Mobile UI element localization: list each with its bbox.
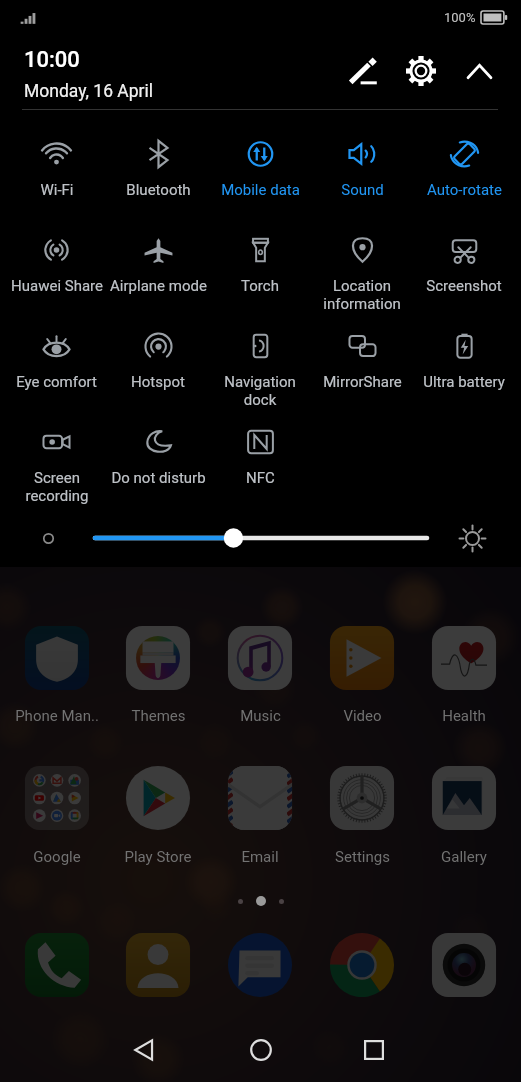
button[interactable]: Email	[209, 762, 311, 880]
button[interactable]: Chrome	[311, 929, 413, 1001]
button[interactable]: Mobile data	[209, 120, 311, 216]
staticText: 100%	[444, 10, 476, 25]
staticText: Airplane mode	[110, 277, 207, 295]
staticText: Auto-rotate	[427, 181, 502, 199]
button[interactable]: NFC	[209, 408, 311, 504]
staticText: Screenshot	[426, 277, 502, 295]
staticText: Eye comfort	[16, 373, 97, 391]
staticText: Wi-Fi	[40, 181, 74, 199]
staticText: Play Store	[124, 848, 192, 866]
button[interactable]: Eye comfort	[6, 312, 107, 408]
button[interactable]: Settings	[311, 762, 413, 880]
button[interactable]: Location information	[311, 216, 413, 312]
button[interactable]: Ultra battery	[413, 312, 515, 408]
staticText: Gallery	[441, 848, 487, 866]
button[interactable]: Torch	[209, 216, 311, 312]
button[interactable]: Airplane mode	[107, 216, 209, 312]
button[interactable]: Wi-Fi	[6, 120, 107, 216]
staticText: Huawei Share	[11, 277, 103, 295]
button[interactable]: Home	[231, 1020, 291, 1080]
staticText: Google	[33, 848, 81, 866]
button[interactable]: Recents	[344, 1020, 404, 1080]
button[interactable]: MirrorShare	[311, 312, 413, 408]
button[interactable]: Auto brightness	[28, 519, 68, 557]
button[interactable]: Settings	[397, 47, 445, 95]
button[interactable]: Themes	[107, 622, 209, 740]
staticText: Hotspot	[131, 373, 185, 391]
staticText: Email	[241, 848, 279, 866]
button[interactable]: Screenshot	[413, 216, 515, 312]
button[interactable]: Hotspot	[107, 312, 209, 408]
staticText: Video	[343, 707, 382, 725]
button[interactable]: Collapse	[455, 47, 503, 95]
button[interactable]: Back	[115, 1020, 175, 1080]
button[interactable]: Do not disturb	[107, 408, 209, 504]
button[interactable]: Brightness	[452, 519, 492, 557]
staticText: Mobile data	[221, 181, 300, 199]
button[interactable]: Navigation dock	[209, 312, 311, 408]
staticText: Themes	[131, 707, 186, 725]
staticText: Sound	[341, 181, 384, 199]
button[interactable]: Video	[311, 622, 413, 740]
staticText: NFC	[246, 469, 275, 487]
staticText: Navigation dock	[224, 373, 296, 408]
staticText: Settings	[335, 848, 390, 866]
button[interactable]: Sound	[311, 120, 413, 216]
button[interactable]: Brightness slider	[90, 519, 432, 557]
button[interactable]: Gallery	[413, 762, 515, 880]
button[interactable]: Camera	[413, 929, 515, 1001]
button[interactable]: Health	[413, 622, 515, 740]
button[interactable]: Play Store	[107, 762, 209, 880]
button[interactable]: Huawei Share	[6, 216, 107, 312]
staticText: Phone Man..	[15, 707, 99, 725]
button[interactable]: Auto-rotate	[413, 120, 515, 216]
staticText: Torch	[241, 277, 279, 295]
staticText: Monday, 16 April	[24, 81, 154, 102]
staticText: Bluetooth	[126, 181, 191, 199]
staticText: Location information	[323, 277, 401, 312]
staticText: Health	[442, 707, 486, 725]
button[interactable]: Contacts	[107, 929, 209, 1001]
button[interactable]: Phone	[6, 929, 107, 1001]
staticText: Do not disturb	[111, 469, 206, 487]
button[interactable]: Messages	[209, 929, 311, 1001]
staticText: Screen recording	[25, 469, 89, 504]
button[interactable]: Bluetooth	[107, 120, 209, 216]
button[interactable]: Screen recording	[6, 408, 107, 504]
button[interactable]: Edit	[339, 47, 387, 95]
staticText: Ultra battery	[423, 373, 505, 391]
button[interactable]: Music	[209, 622, 311, 740]
button[interactable]: Google	[6, 762, 107, 880]
staticText: 10:00	[24, 47, 80, 73]
button[interactable]: Phone Man..	[6, 622, 107, 740]
staticText: Music	[240, 707, 281, 725]
staticText: MirrorShare	[323, 373, 402, 391]
